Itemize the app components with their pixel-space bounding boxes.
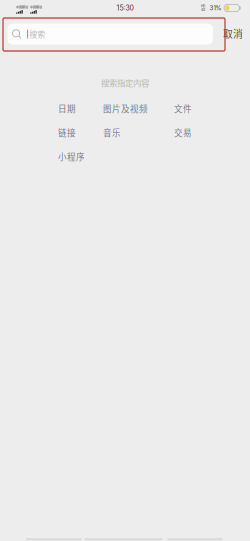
staticText: 15:30 bbox=[116, 4, 133, 12]
staticText: 小程序 bbox=[58, 150, 85, 163]
staticText: 中国移动 bbox=[16, 5, 28, 9]
staticText: 31% bbox=[209, 4, 221, 12]
staticText: 搜索 bbox=[29, 28, 45, 40]
staticText: 中国移动 bbox=[30, 5, 42, 9]
staticText: 搜索指定内容 bbox=[101, 76, 149, 89]
button[interactable]: 日期 bbox=[58, 102, 76, 115]
staticText: 音乐 bbox=[103, 126, 121, 139]
staticText: 链接 bbox=[58, 126, 76, 139]
button[interactable]: 取消 bbox=[223, 28, 245, 39]
staticText: HD bbox=[201, 4, 205, 8]
button[interactable]: 图片及视频 bbox=[103, 102, 148, 115]
button[interactable]: 链接 bbox=[58, 126, 76, 139]
button[interactable]: 交易 bbox=[174, 126, 192, 139]
staticText: 图片及视频 bbox=[103, 102, 148, 115]
staticText: 取消 bbox=[223, 26, 243, 41]
button[interactable]: 文件 bbox=[174, 102, 192, 115]
button[interactable]: 搜索 bbox=[7, 23, 213, 44]
staticText: 文件 bbox=[174, 102, 192, 115]
staticText: 日期 bbox=[58, 102, 76, 115]
staticText: 4G bbox=[201, 8, 205, 12]
button[interactable]: 音乐 bbox=[103, 126, 121, 139]
button[interactable]: 小程序 bbox=[58, 150, 85, 163]
staticText: 交易 bbox=[174, 126, 192, 139]
